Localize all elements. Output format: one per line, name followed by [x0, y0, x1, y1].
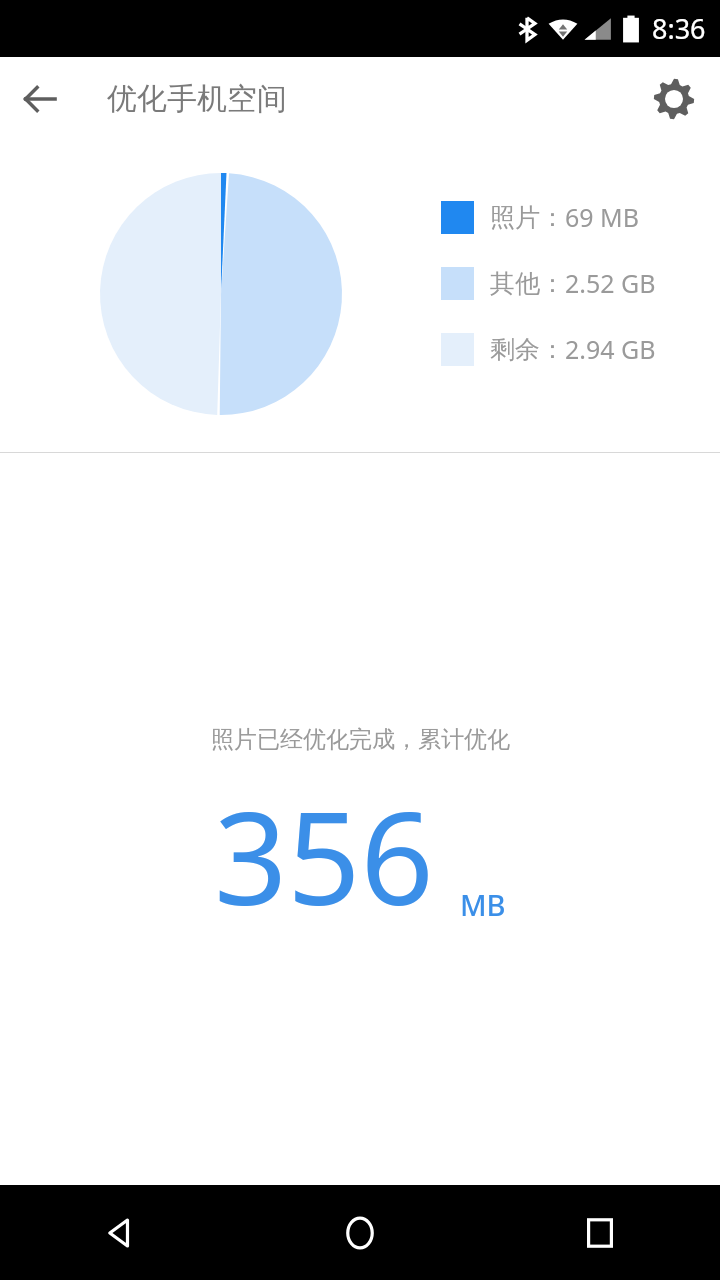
button[interactable]: 剩余：: [441, 332, 656, 366]
button[interactable]: 其他：: [441, 266, 656, 300]
button[interactable]: Home: [240, 1185, 480, 1280]
staticText: MB: [460, 885, 506, 924]
staticText: 8:36: [652, 10, 706, 47]
staticText: 其他：: [490, 268, 565, 299]
staticText: 356: [214, 768, 434, 942]
staticText: 2.52 GB: [565, 266, 656, 300]
staticText: 优化手机空间: [107, 80, 287, 118]
staticText: 剩余：: [490, 334, 565, 365]
button[interactable]: Recent apps: [480, 1185, 720, 1280]
button[interactable]: Back: [8, 67, 72, 131]
staticText: 2.94 GB: [565, 332, 656, 366]
button[interactable]: 照片：: [441, 200, 640, 234]
button[interactable]: Back: [0, 1185, 240, 1280]
staticText: 照片已经优化完成，累计优化: [211, 725, 510, 754]
staticText: 照片：: [490, 202, 565, 233]
staticText: 69 MB: [565, 200, 640, 234]
button[interactable]: Settings: [640, 65, 708, 133]
